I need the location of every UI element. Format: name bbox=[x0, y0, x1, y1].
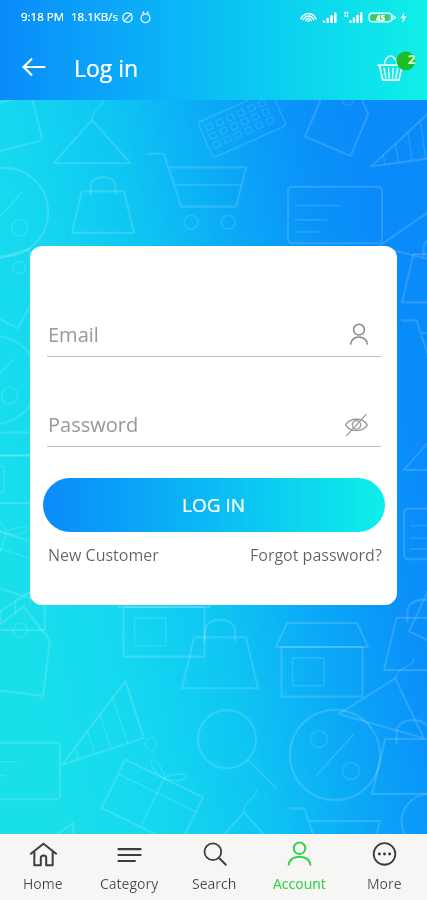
staticText: 18.1KB/s bbox=[71, 9, 118, 25]
button[interactable]: Back bbox=[16, 49, 52, 85]
staticText: Log in bbox=[74, 52, 139, 83]
button[interactable]: Account bbox=[257, 834, 342, 900]
button[interactable]: Search bbox=[172, 834, 257, 900]
button[interactable]: Home bbox=[0, 834, 86, 900]
staticText: Search bbox=[192, 874, 237, 893]
staticText: Home bbox=[23, 874, 63, 893]
staticText: Account bbox=[273, 874, 326, 893]
button[interactable]: Forgot password? bbox=[250, 544, 382, 566]
staticText: Category bbox=[100, 874, 159, 893]
button[interactable]: More bbox=[342, 834, 427, 900]
staticText: 9:18 PM bbox=[21, 9, 64, 25]
staticText: Email bbox=[48, 321, 350, 348]
button[interactable]: Cart bbox=[375, 45, 419, 89]
staticText: More bbox=[367, 874, 402, 893]
button[interactable]: LOG IN bbox=[43, 478, 385, 532]
staticText: Password bbox=[48, 411, 345, 438]
button[interactable]: Category bbox=[86, 834, 172, 900]
button[interactable]: New Customer bbox=[48, 544, 159, 566]
staticText: 45 bbox=[376, 12, 386, 23]
staticText: 2 bbox=[408, 50, 416, 68]
staticText: LOG IN bbox=[182, 492, 246, 518]
